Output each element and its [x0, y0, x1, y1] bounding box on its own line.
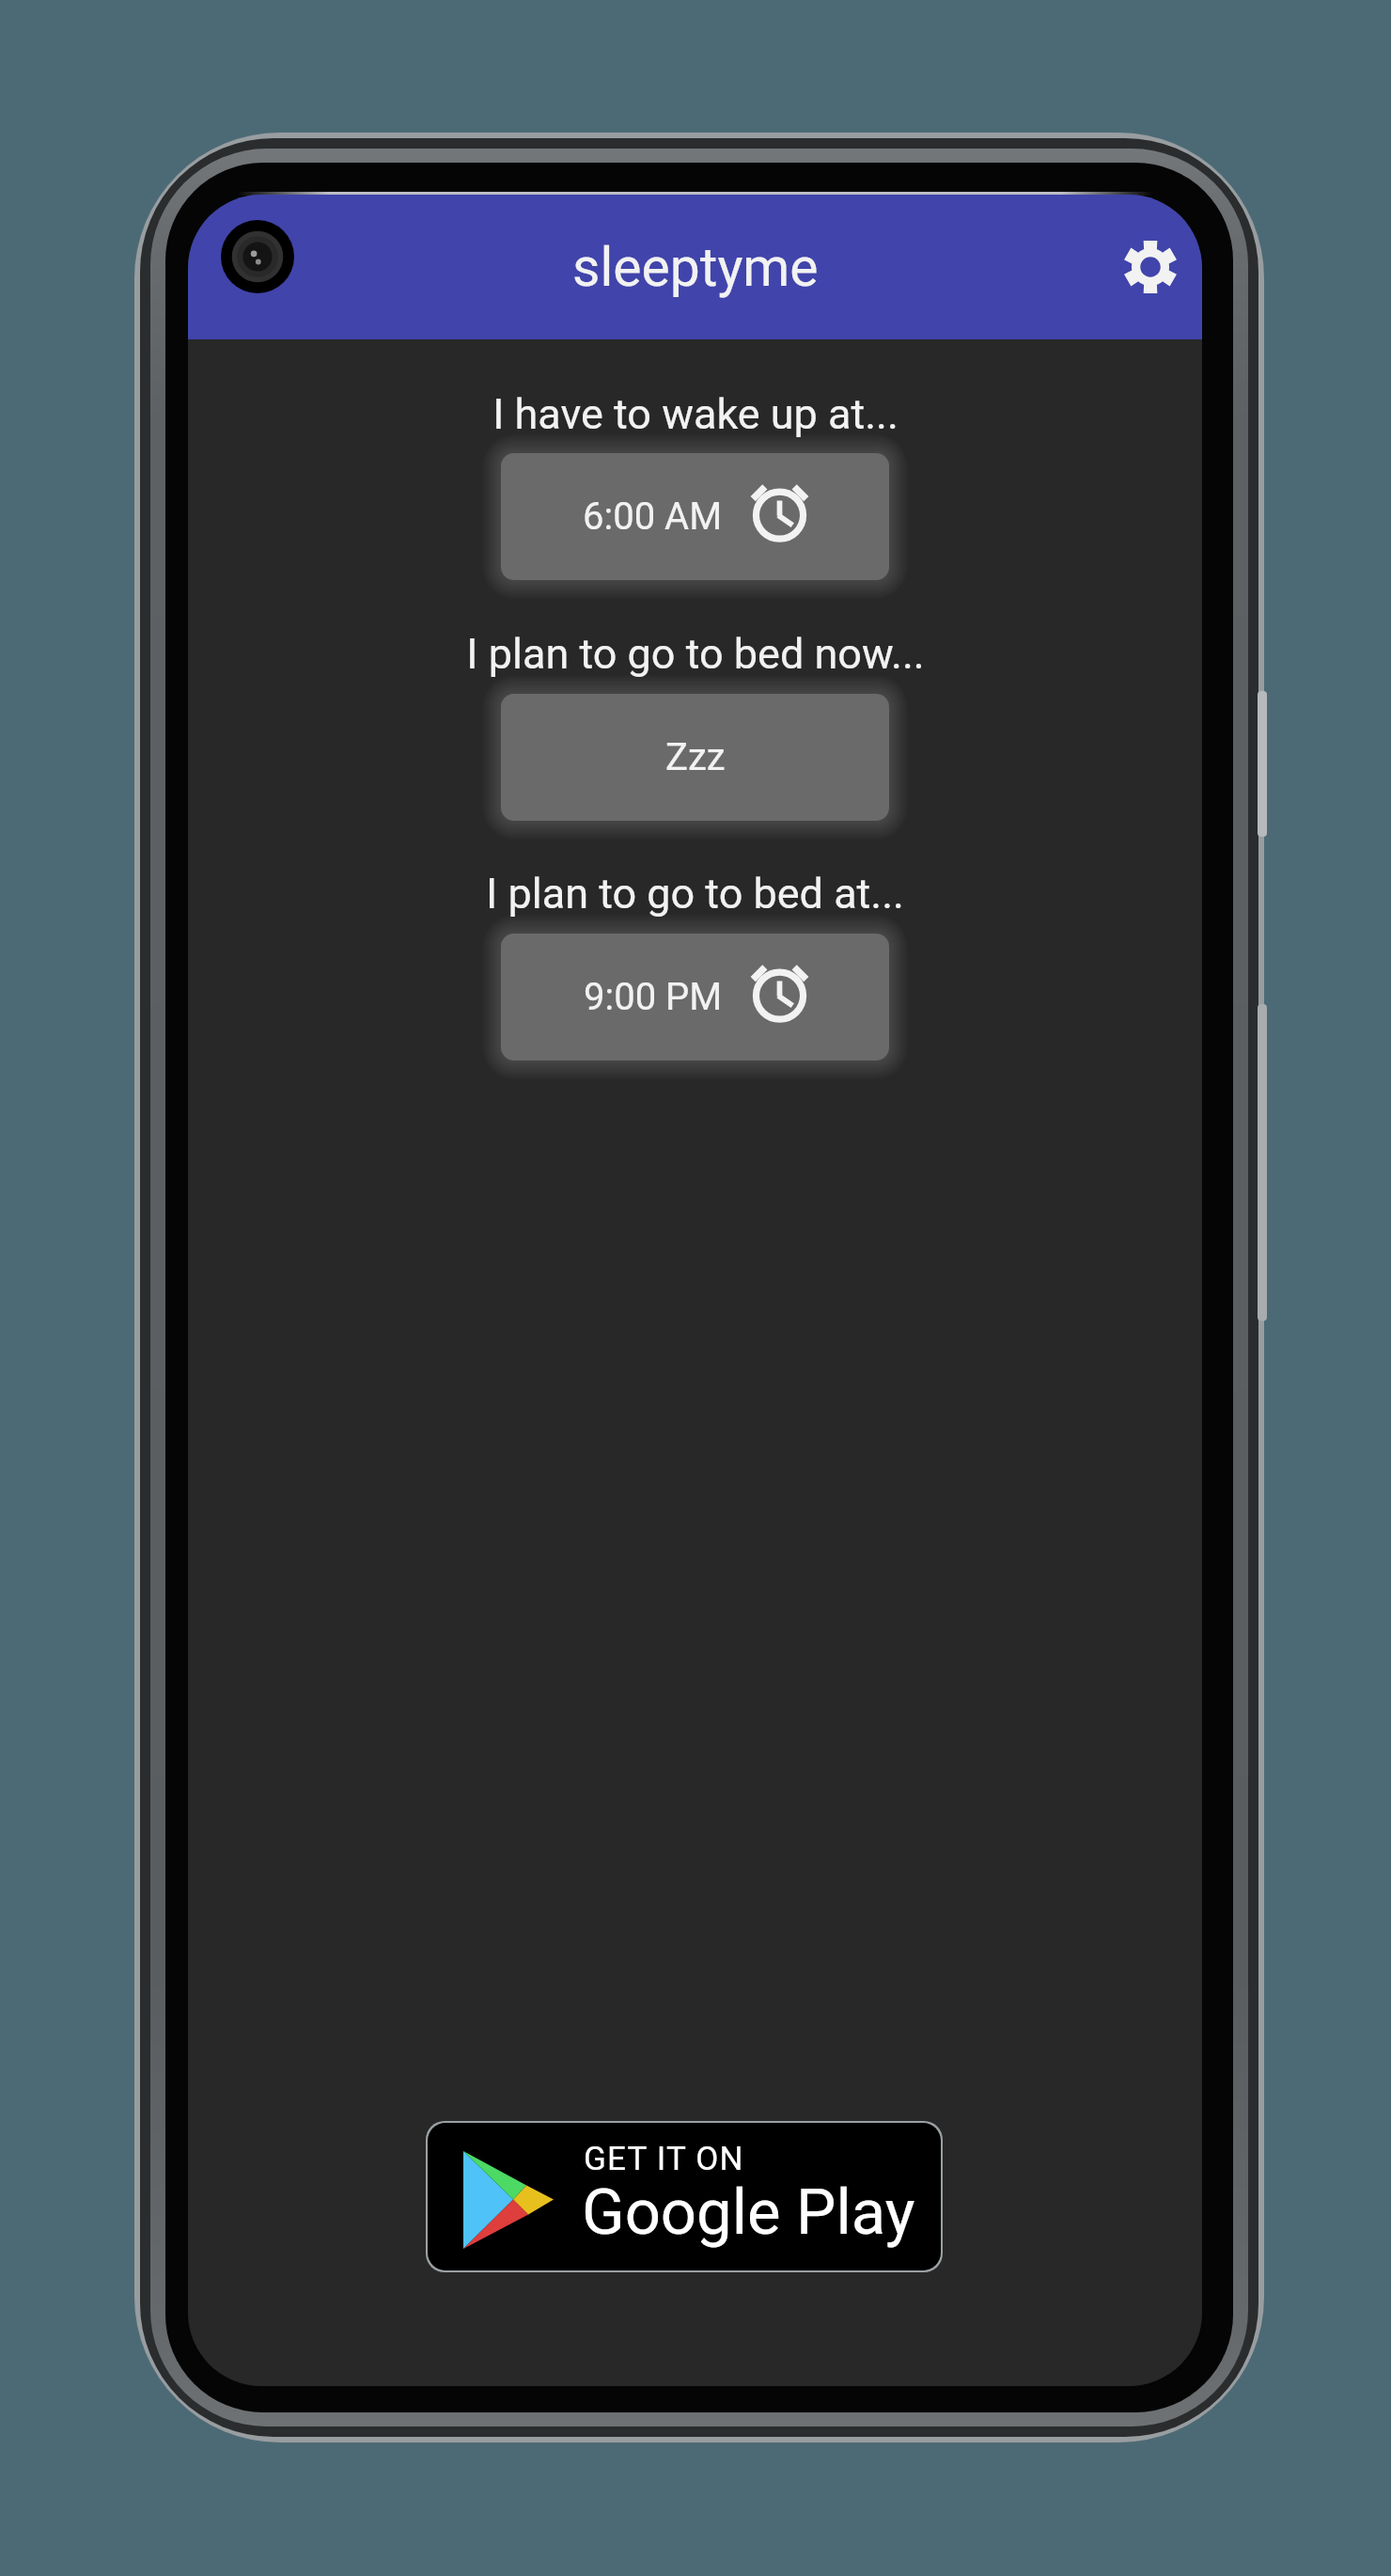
button[interactable]: Zzz — [501, 694, 889, 821]
staticText: Google Play — [582, 2175, 915, 2250]
staticText: sleeptyme — [572, 236, 819, 299]
button[interactable]: 6:00 AM — [501, 453, 889, 580]
button[interactable]: GET IT ON — [428, 2123, 941, 2270]
staticText: Zzz — [665, 735, 726, 779]
staticText: GET IT ON — [584, 2140, 744, 2178]
staticText: I plan to go to bed now... — [466, 629, 925, 679]
button[interactable]: 9:00 PM — [501, 934, 889, 1060]
staticText: 9:00 PM — [584, 975, 723, 1019]
staticText: I plan to go to bed at... — [486, 869, 904, 919]
button[interactable]: Settings — [1109, 226, 1192, 308]
other: Front camera — [221, 220, 294, 293]
staticText: 6:00 AM — [583, 495, 723, 539]
staticText: I have to wake up at... — [492, 389, 899, 439]
